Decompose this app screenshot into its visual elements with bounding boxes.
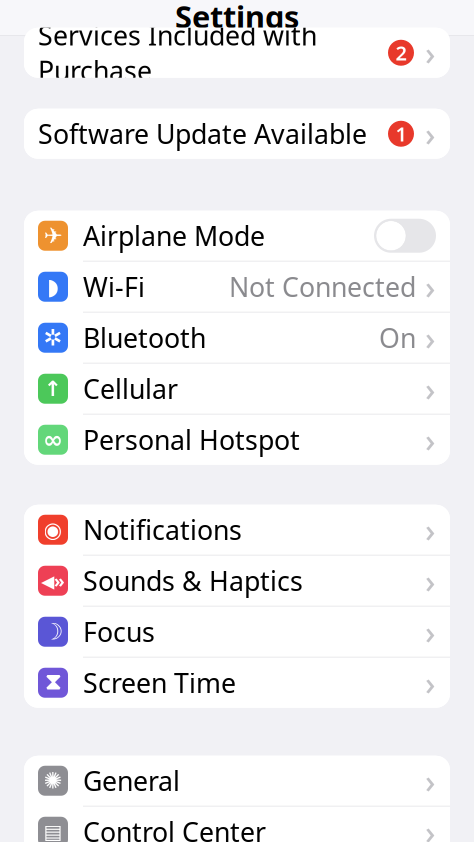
button[interactable]: Services Included with Purchase: [24, 28, 450, 78]
staticText: ›: [425, 265, 435, 308]
staticText: ▤: [43, 820, 62, 842]
staticText: ›: [425, 661, 435, 704]
staticText: ›: [425, 112, 435, 155]
staticText: ☽: [43, 619, 63, 645]
staticText: ✺: [43, 768, 62, 794]
staticText: Not Connected: [229, 269, 416, 304]
button[interactable]: ↑: [24, 364, 450, 414]
button[interactable]: ◀»: [24, 556, 450, 606]
staticText: ✈: [43, 223, 62, 249]
staticText: On: [379, 320, 416, 355]
staticText: Focus: [83, 614, 155, 649]
staticText: ›: [425, 367, 435, 410]
staticText: 2: [395, 39, 406, 66]
staticText: Sounds & Haptics: [83, 563, 303, 598]
staticText: ›: [425, 559, 435, 602]
button[interactable]: ◉: [24, 505, 450, 555]
staticText: Notifications: [83, 512, 242, 547]
staticText: ›: [425, 418, 435, 461]
staticText: ∞: [43, 426, 63, 453]
button[interactable]: ✈: [24, 211, 450, 261]
button[interactable]: ◗: [24, 262, 450, 312]
staticText: Software Update Available: [38, 116, 367, 151]
staticText: ◗: [47, 274, 59, 300]
staticText: General: [83, 763, 180, 798]
staticText: ◉: [43, 518, 62, 542]
staticText: Settings: [175, 0, 299, 37]
staticText: Screen Time: [83, 665, 236, 700]
staticText: ›: [425, 810, 435, 842]
staticText: 1: [395, 120, 406, 147]
button[interactable]: ∞: [24, 415, 450, 465]
staticText: ›: [425, 508, 435, 551]
staticText: Personal Hotspot: [83, 422, 300, 457]
button[interactable]: ✺: [24, 756, 450, 806]
staticText: ⧗: [45, 672, 61, 694]
staticText: Wi-Fi: [83, 269, 145, 304]
staticText: Bluetooth: [83, 320, 206, 355]
button[interactable]: Software Update Available: [24, 109, 450, 159]
button[interactable]: ⧗: [24, 658, 450, 708]
staticText: Airplane Mode: [83, 218, 265, 253]
staticText: ›: [425, 316, 435, 359]
staticText: Control Center: [83, 814, 266, 842]
button[interactable]: ▤: [24, 807, 450, 842]
staticText: ✲: [43, 325, 62, 351]
staticText: ›: [425, 759, 435, 802]
staticText: Cellular: [83, 371, 178, 406]
staticText: ◀»: [41, 569, 65, 592]
staticText: Services Included with Purchase: [38, 17, 317, 88]
staticText: ↑: [44, 377, 62, 401]
button[interactable]: ✲: [24, 313, 450, 363]
staticText: ›: [425, 610, 435, 653]
button[interactable]: ☽: [24, 607, 450, 657]
staticText: ›: [425, 31, 435, 74]
